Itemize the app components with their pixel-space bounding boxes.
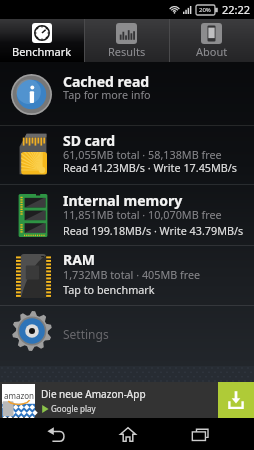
staticText: 61,055MB total · 58,138MB free — [63, 147, 222, 162]
button[interactable]: Install — [218, 382, 254, 418]
button[interactable]: Results — [84, 19, 169, 62]
staticText: Tap to benchmark — [63, 282, 155, 297]
staticText: Google play — [51, 403, 96, 414]
button[interactable]: Recents — [173, 418, 226, 450]
button[interactable]: Home — [101, 418, 154, 450]
staticText: Internal memory — [63, 191, 183, 210]
staticText: Cached read — [63, 72, 150, 91]
staticText: Benchmark — [12, 44, 72, 59]
staticText: 11,851MB total · 10,070MB free — [63, 207, 222, 222]
staticText: SD card — [63, 131, 116, 150]
staticText: 20% — [199, 6, 211, 14]
staticText: Results — [108, 44, 146, 59]
staticText: Settings — [63, 326, 109, 342]
button[interactable]: About — [169, 19, 254, 62]
button[interactable]: RAM — [0, 246, 254, 305]
staticText: Tap for more info — [63, 87, 151, 102]
staticText: amazon — [4, 390, 34, 401]
staticText: Read 199.18MB/s · Write 43.79MB/s — [63, 223, 244, 238]
button[interactable]: Internal memory — [0, 185, 254, 245]
staticText: About — [196, 44, 228, 59]
staticText: 1,732MB total · 405MB free — [63, 267, 201, 282]
staticText: RAM — [63, 250, 96, 269]
staticText: Die neue Amazon-App — [41, 387, 146, 401]
staticText: 22:22 — [222, 2, 251, 17]
button[interactable]: Back — [29, 418, 82, 450]
button[interactable]: SD card — [0, 126, 254, 184]
staticText: Read 41.23MB/s · Write 17.45MB/s — [63, 160, 237, 175]
button[interactable]: Settings — [0, 306, 254, 366]
button[interactable]: Cached read — [0, 62, 254, 125]
button[interactable]: Benchmark — [0, 19, 84, 62]
